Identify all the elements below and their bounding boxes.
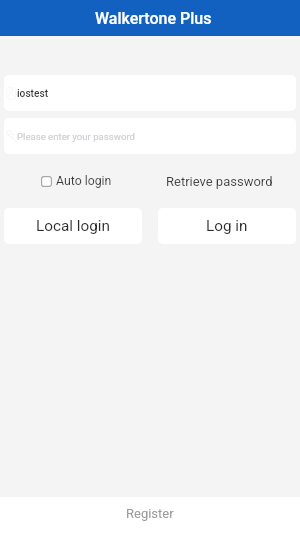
- staticText: Walkertone Plus: [95, 9, 212, 28]
- button[interactable]: Auto login: [41, 174, 112, 188]
- staticText: Register: [126, 506, 174, 521]
- button[interactable]: Retrieve password: [162, 170, 277, 192]
- staticText: Please enter your password: [17, 131, 135, 142]
- other: Account: [6, 87, 16, 100]
- staticText: Local login: [36, 217, 111, 235]
- button[interactable]: Account: [4, 75, 296, 111]
- staticText: Log in: [206, 217, 248, 235]
- staticText: Auto login: [56, 174, 112, 188]
- button[interactable]: Local login: [4, 208, 142, 244]
- button[interactable]: Log in: [158, 208, 296, 244]
- button[interactable]: Register: [0, 497, 300, 533]
- staticText: Retrieve password: [166, 174, 273, 189]
- button[interactable]: Password: [4, 118, 296, 154]
- other: Password: [6, 130, 17, 142]
- staticText: iostest: [17, 88, 49, 100]
